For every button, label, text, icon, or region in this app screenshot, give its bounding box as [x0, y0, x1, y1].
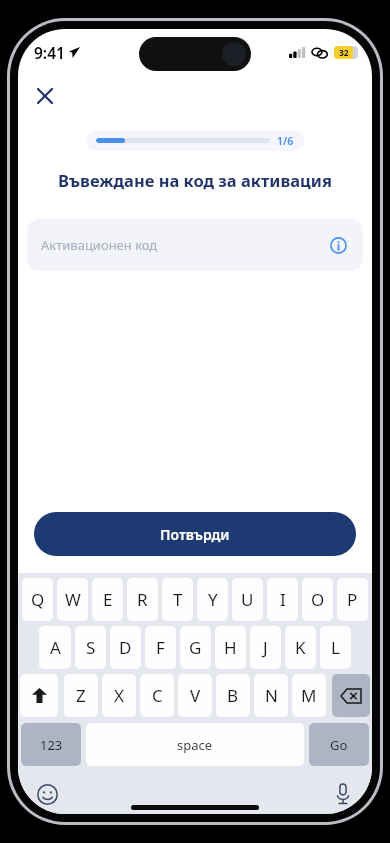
button[interactable]: Y — [197, 578, 228, 621]
button[interactable]: H — [215, 626, 246, 669]
staticText: P — [347, 588, 358, 611]
button[interactable]: J — [250, 626, 281, 669]
staticText: X — [114, 684, 124, 707]
button[interactable]: F — [145, 626, 176, 669]
button[interactable]: Info — [325, 232, 351, 258]
staticText: Въвеждане на код за активация — [32, 169, 358, 191]
staticText: G — [189, 636, 202, 659]
staticText: A — [50, 636, 61, 659]
button[interactable]: P — [337, 578, 368, 621]
staticText: D — [119, 636, 132, 659]
staticText: L — [331, 636, 340, 659]
button[interactable]: L — [320, 626, 351, 669]
staticText: E — [103, 588, 113, 611]
button[interactable]: I — [267, 578, 298, 621]
staticText: Z — [76, 684, 86, 707]
button[interactable]: Close — [28, 79, 62, 113]
button[interactable]: Dictation — [328, 779, 358, 809]
staticText: space — [177, 736, 213, 754]
button[interactable]: D — [110, 626, 141, 669]
staticText: N — [265, 684, 278, 707]
staticText: Q — [31, 588, 45, 611]
button[interactable]: V — [178, 674, 212, 717]
staticText: B — [227, 684, 239, 707]
staticText: K — [295, 636, 306, 659]
button[interactable]: Emoji — [32, 779, 62, 809]
button[interactable]: A — [39, 626, 71, 669]
button[interactable]: Go — [309, 723, 369, 766]
button[interactable]: G — [180, 626, 211, 669]
staticText: F — [156, 636, 165, 659]
staticText: R — [137, 588, 148, 611]
button[interactable]: B — [216, 674, 250, 717]
button[interactable]: X — [102, 674, 136, 717]
button[interactable]: S — [75, 626, 106, 669]
staticText: H — [224, 636, 237, 659]
staticText: M — [301, 684, 317, 707]
button[interactable]: Активационен код — [27, 219, 363, 271]
staticText: T — [173, 588, 183, 611]
staticText: Y — [208, 588, 218, 611]
button[interactable]: T — [162, 578, 193, 621]
staticText: 9:41 — [34, 42, 65, 63]
staticText: J — [263, 636, 268, 659]
button[interactable]: 123 — [21, 723, 81, 766]
button[interactable]: N — [254, 674, 288, 717]
staticText: 32 — [339, 47, 349, 59]
button[interactable]: Потвърди — [34, 512, 356, 556]
button[interactable]: Z — [64, 674, 98, 717]
button[interactable]: U — [232, 578, 263, 621]
staticText: S — [86, 636, 96, 659]
staticText: W — [65, 588, 81, 611]
button[interactable]: space — [86, 723, 304, 766]
button[interactable]: C — [140, 674, 174, 717]
staticText: Go — [330, 736, 348, 754]
button[interactable]: R — [127, 578, 158, 621]
button[interactable]: W — [57, 578, 88, 621]
button[interactable]: Q — [22, 578, 53, 621]
staticText: U — [241, 588, 254, 611]
staticText: Потвърди — [160, 525, 230, 544]
staticText: V — [190, 684, 201, 707]
button[interactable]: E — [92, 578, 123, 621]
staticText: 123 — [40, 736, 63, 754]
staticText: I — [280, 588, 286, 611]
button[interactable]: Shift — [20, 674, 58, 717]
staticText: O — [311, 588, 325, 611]
staticText: 1/6 — [277, 134, 294, 148]
button[interactable]: M — [292, 674, 326, 717]
button[interactable]: Backspace — [332, 674, 370, 717]
staticText: C — [152, 684, 163, 707]
staticText: Активационен код — [41, 236, 158, 254]
button[interactable]: K — [285, 626, 316, 669]
button[interactable]: O — [302, 578, 333, 621]
